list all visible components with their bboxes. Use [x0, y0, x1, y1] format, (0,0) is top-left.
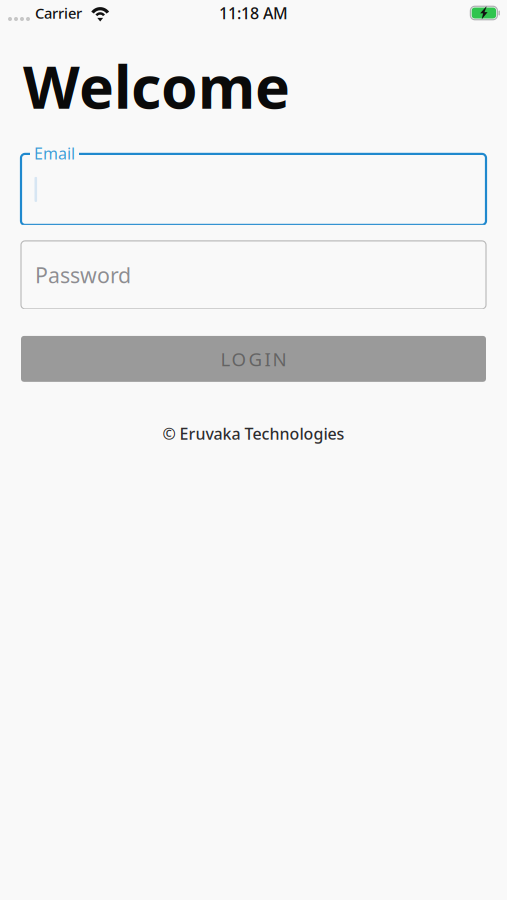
staticText: © Eruvaka Technologies [162, 423, 344, 444]
button[interactable]: LOGIN [21, 336, 486, 382]
staticText: Carrier [35, 3, 82, 23]
staticText: Password [35, 261, 131, 289]
button[interactable]: Password [21, 241, 486, 309]
staticText: Welcome [23, 47, 290, 125]
staticText: 11:18 AM [219, 2, 288, 24]
staticText: Email [34, 143, 75, 164]
staticText: LOGIN [220, 346, 286, 371]
button[interactable]: Email [21, 154, 486, 225]
